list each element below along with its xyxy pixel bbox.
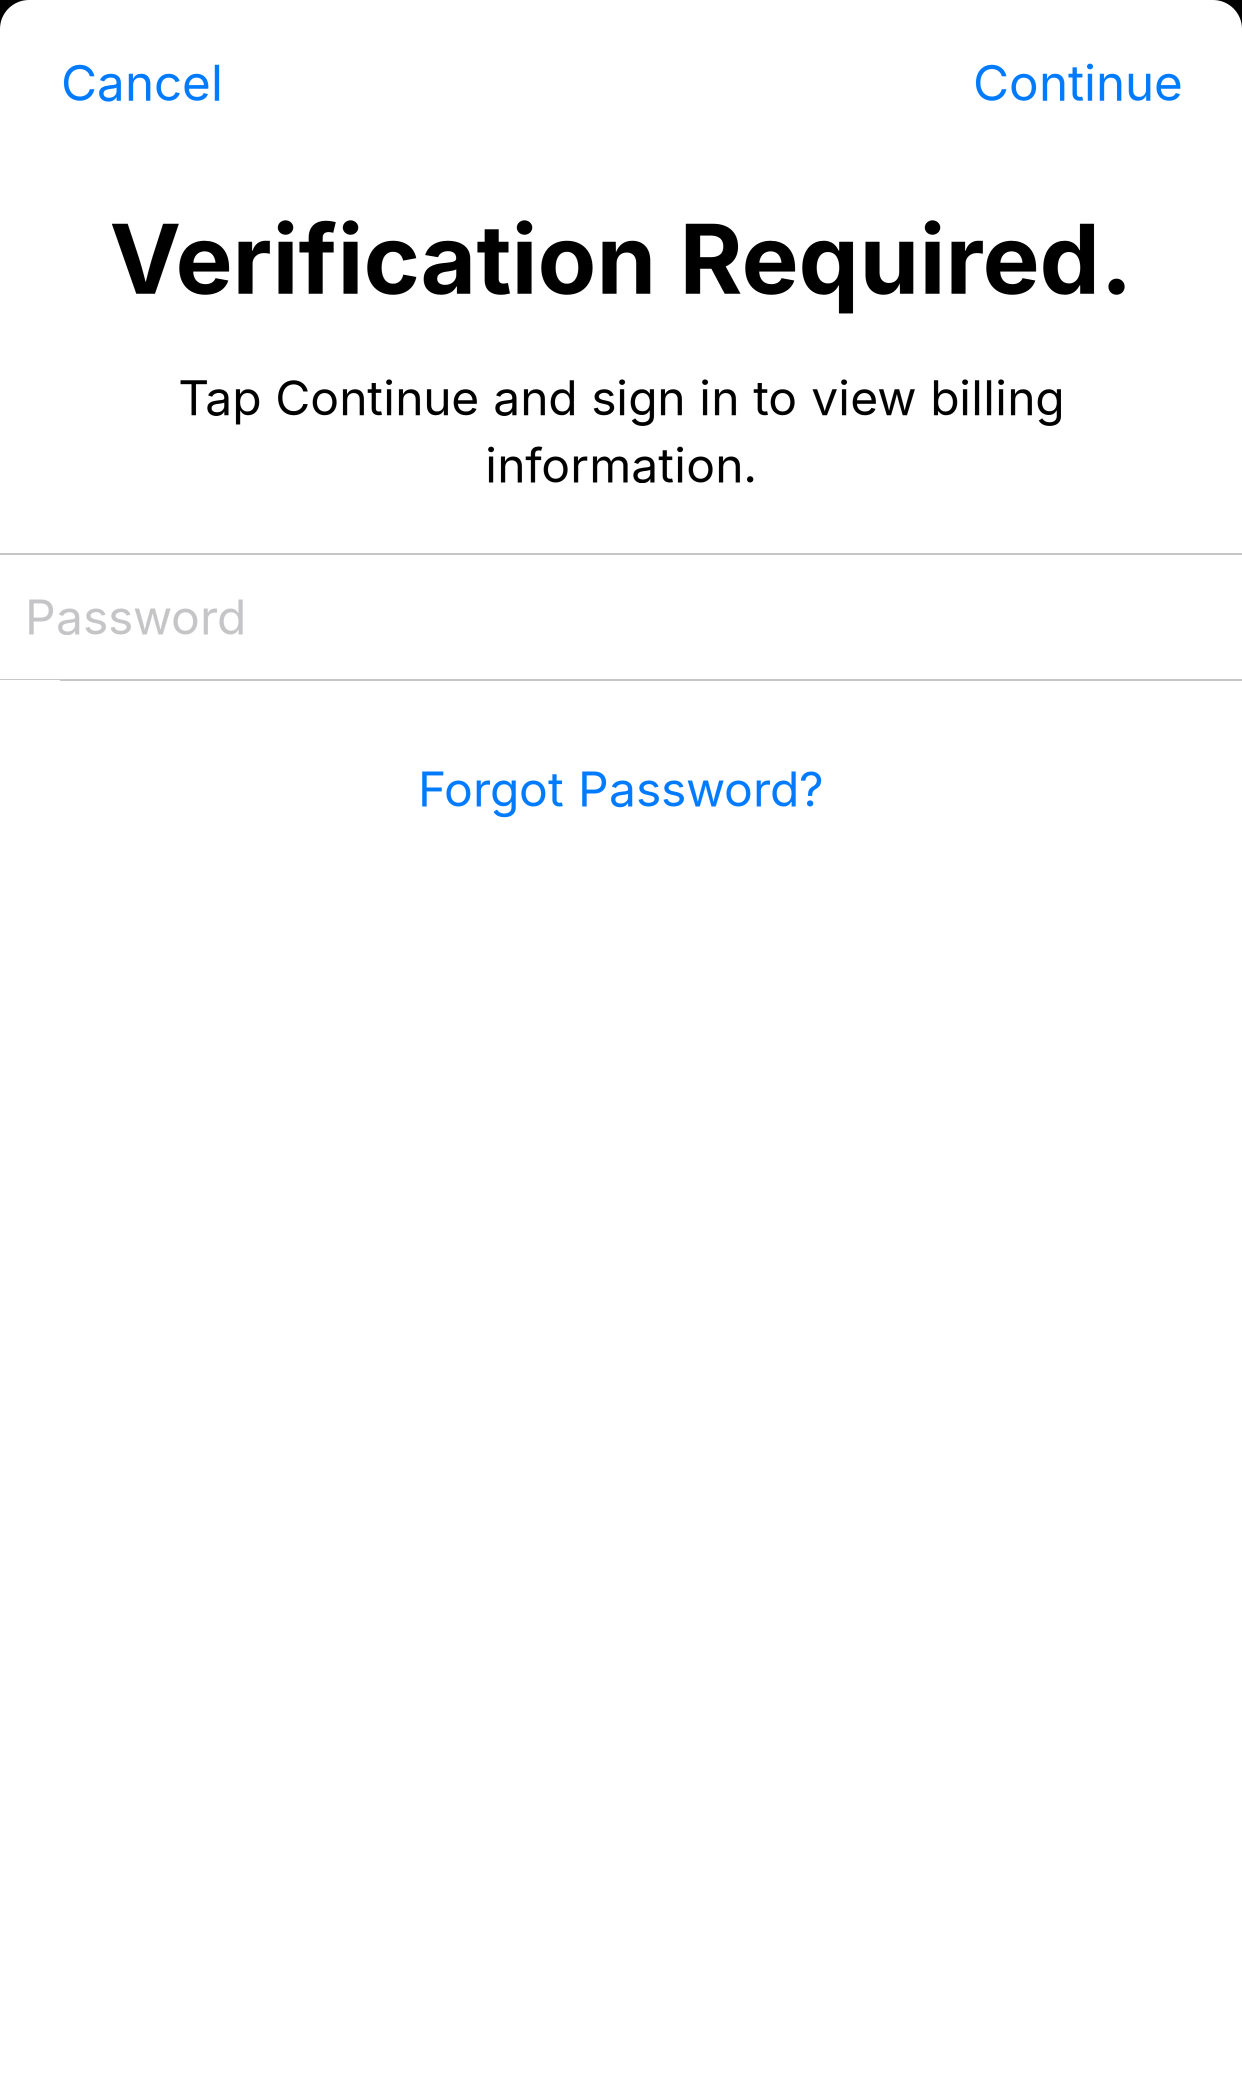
staticText: Tap Continue and sign in to view billing… bbox=[178, 369, 1064, 494]
staticText: Forgot Password? bbox=[418, 760, 824, 818]
staticText: Verification Required. bbox=[109, 201, 1132, 317]
button[interactable]: Password bbox=[0, 555, 1242, 679]
staticText: Cancel bbox=[61, 53, 223, 113]
button[interactable]: Cancel bbox=[49, 36, 235, 130]
button[interactable]: Forgot Password? bbox=[0, 724, 1242, 854]
staticText: Continue bbox=[973, 53, 1183, 113]
button[interactable]: Continue bbox=[961, 35, 1195, 131]
staticText: Password bbox=[25, 588, 246, 646]
